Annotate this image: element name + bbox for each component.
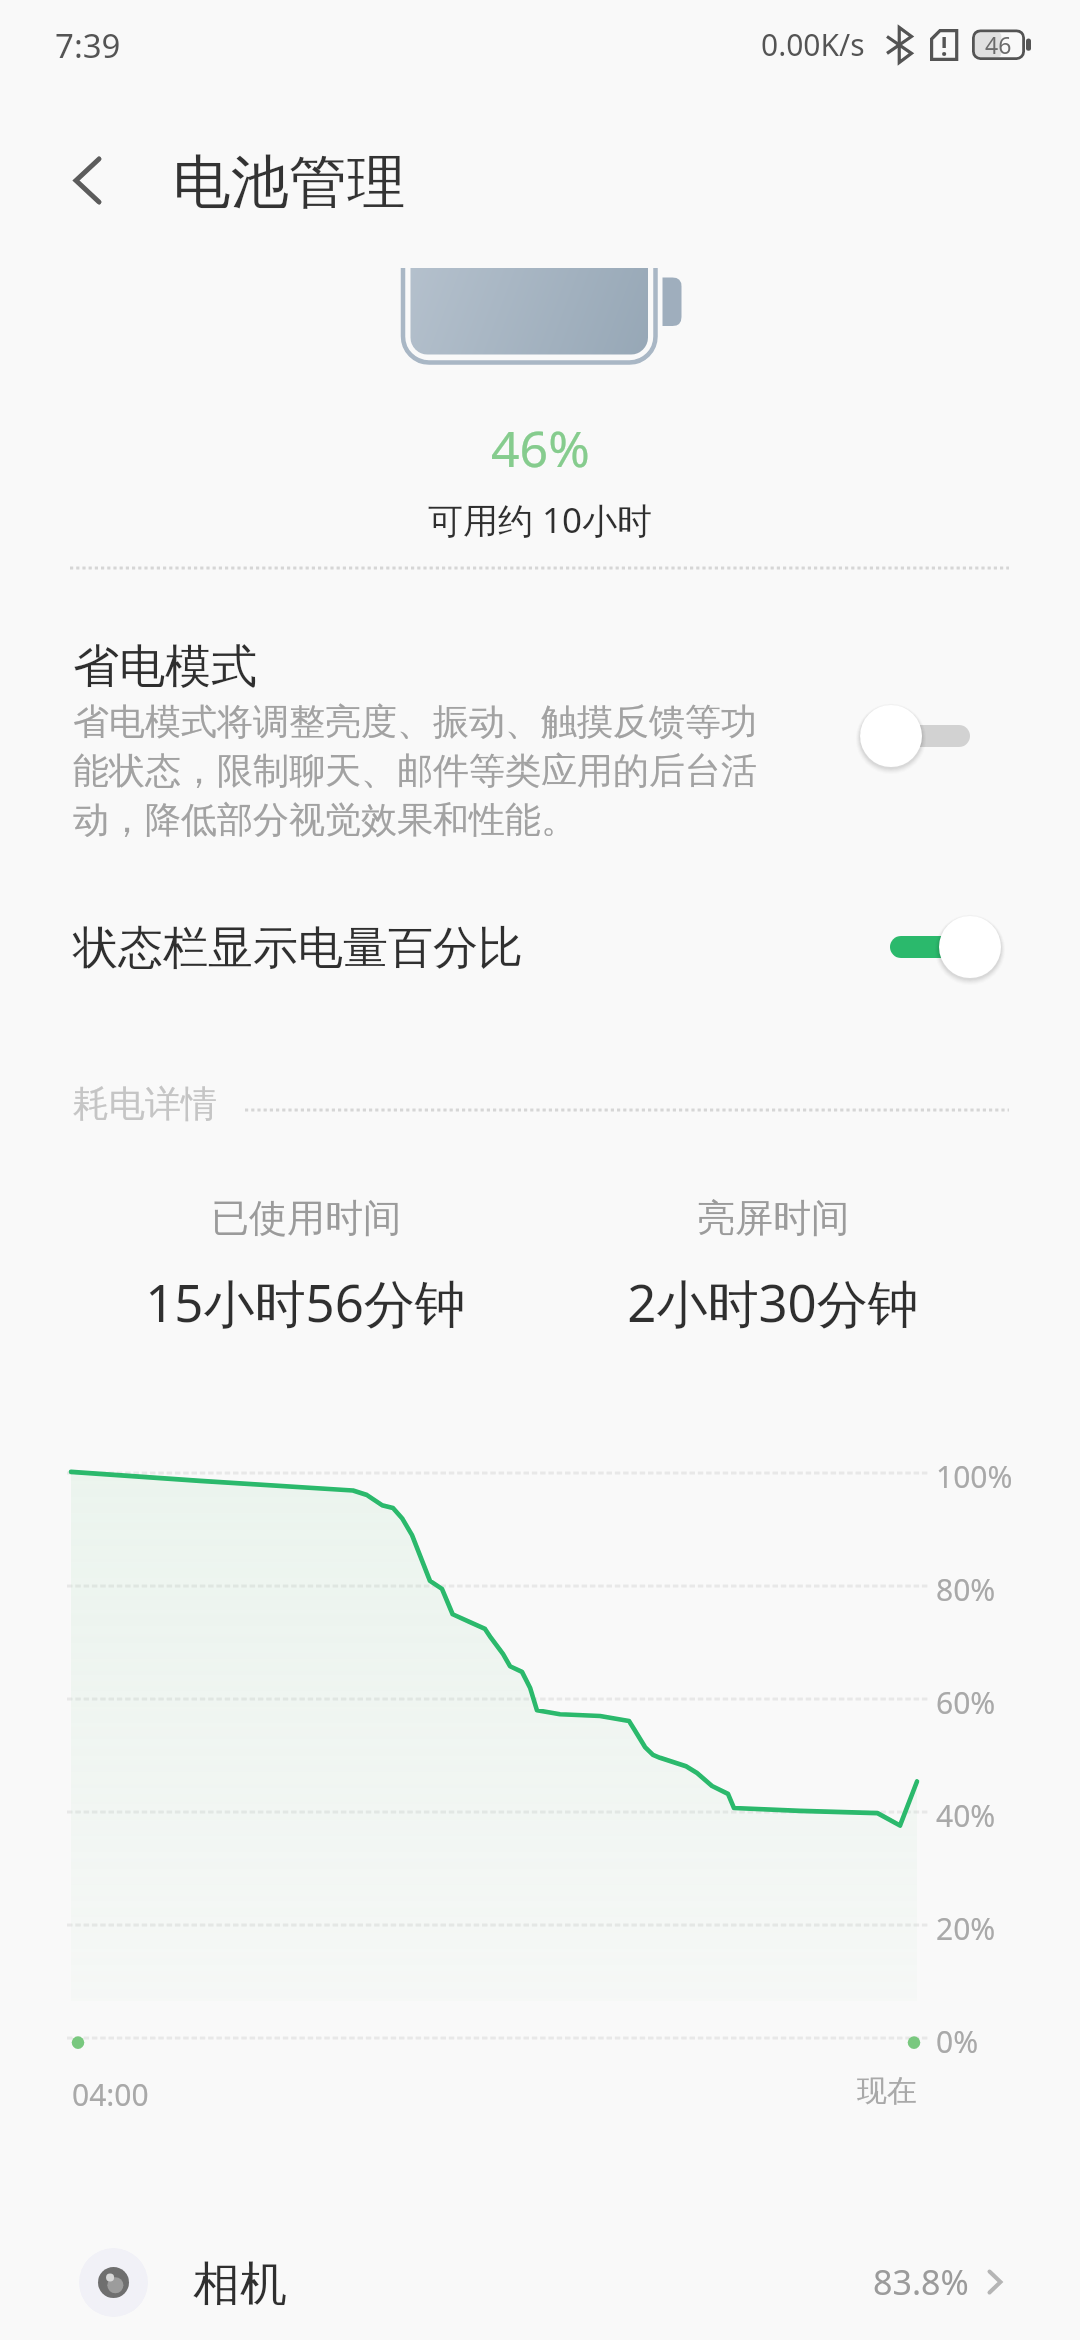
staticText: 相机 <box>193 2255 287 2314</box>
staticText: 83.8% <box>873 2259 969 2305</box>
staticText: 80% <box>936 1569 996 1610</box>
button[interactable]: Toggle off <box>850 692 1010 780</box>
staticText: 省电模式将调整亮度、振动、触摸反馈等功能状态，限制聊天、邮件等类应用的后台活动，… <box>73 699 773 842</box>
button[interactable]: Toggle on <box>850 903 1010 991</box>
staticText: 7:39 <box>55 23 121 68</box>
staticText: 省电模式 <box>73 638 257 696</box>
staticText: 20% <box>936 1908 996 1949</box>
staticText: 已使用时间 <box>211 1194 401 1242</box>
staticText: 2小时30分钟 <box>627 1267 919 1337</box>
button[interactable]: Back <box>44 136 130 224</box>
button[interactable]: 相机 <box>0 2213 1080 2340</box>
staticText: 60% <box>936 1682 996 1723</box>
button[interactable]: 省电模式 <box>0 600 1080 880</box>
staticText: 可用约 10小时 <box>428 496 653 544</box>
staticText: 现在 <box>857 2072 917 2110</box>
staticText: 40% <box>936 1795 996 1836</box>
staticText: 100% <box>936 1456 1013 1497</box>
button[interactable]: 状态栏显示电量百分比 <box>0 890 1080 1005</box>
staticText: 状态栏显示电量百分比 <box>73 920 523 977</box>
staticText: 耗电详情 <box>73 1081 217 1126</box>
staticText: 46% <box>491 414 590 482</box>
staticText: 0.00K/s <box>761 24 865 65</box>
staticText: 亮屏时间 <box>697 1194 849 1242</box>
staticText: 0% <box>936 2021 979 2062</box>
staticText: 46 <box>985 29 1012 60</box>
staticText: 04:00 <box>72 2074 149 2115</box>
staticText: 15小时56分钟 <box>145 1267 466 1337</box>
staticText: 电池管理 <box>173 146 405 219</box>
